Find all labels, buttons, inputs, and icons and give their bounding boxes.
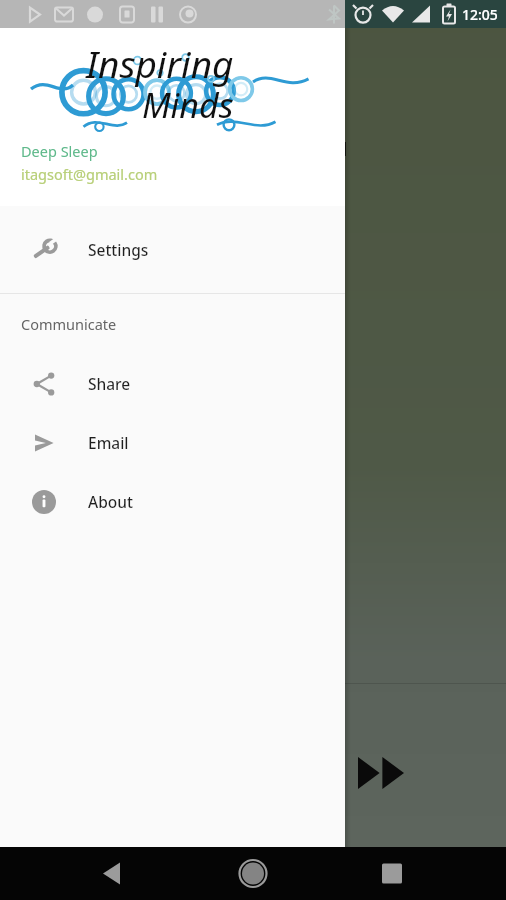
button[interactable]: Share (0, 354, 345, 413)
staticText: Share (88, 373, 131, 394)
staticText: Email (88, 432, 129, 453)
staticText: Minds (142, 82, 234, 128)
staticText: 12:05 (462, 5, 498, 24)
button[interactable]: Settings (0, 206, 345, 279)
staticText: itagsoft@gmail.com (21, 164, 158, 184)
staticText: Communicate (21, 314, 117, 334)
button[interactable]: About (0, 472, 345, 531)
button[interactable]: Email (0, 413, 345, 472)
staticText: Deep Sleep (21, 141, 98, 161)
staticText: About (88, 491, 133, 512)
staticText: Inspiring (86, 38, 234, 88)
button[interactable]: Fast forward (352, 750, 410, 796)
staticText: Settings (88, 239, 149, 260)
